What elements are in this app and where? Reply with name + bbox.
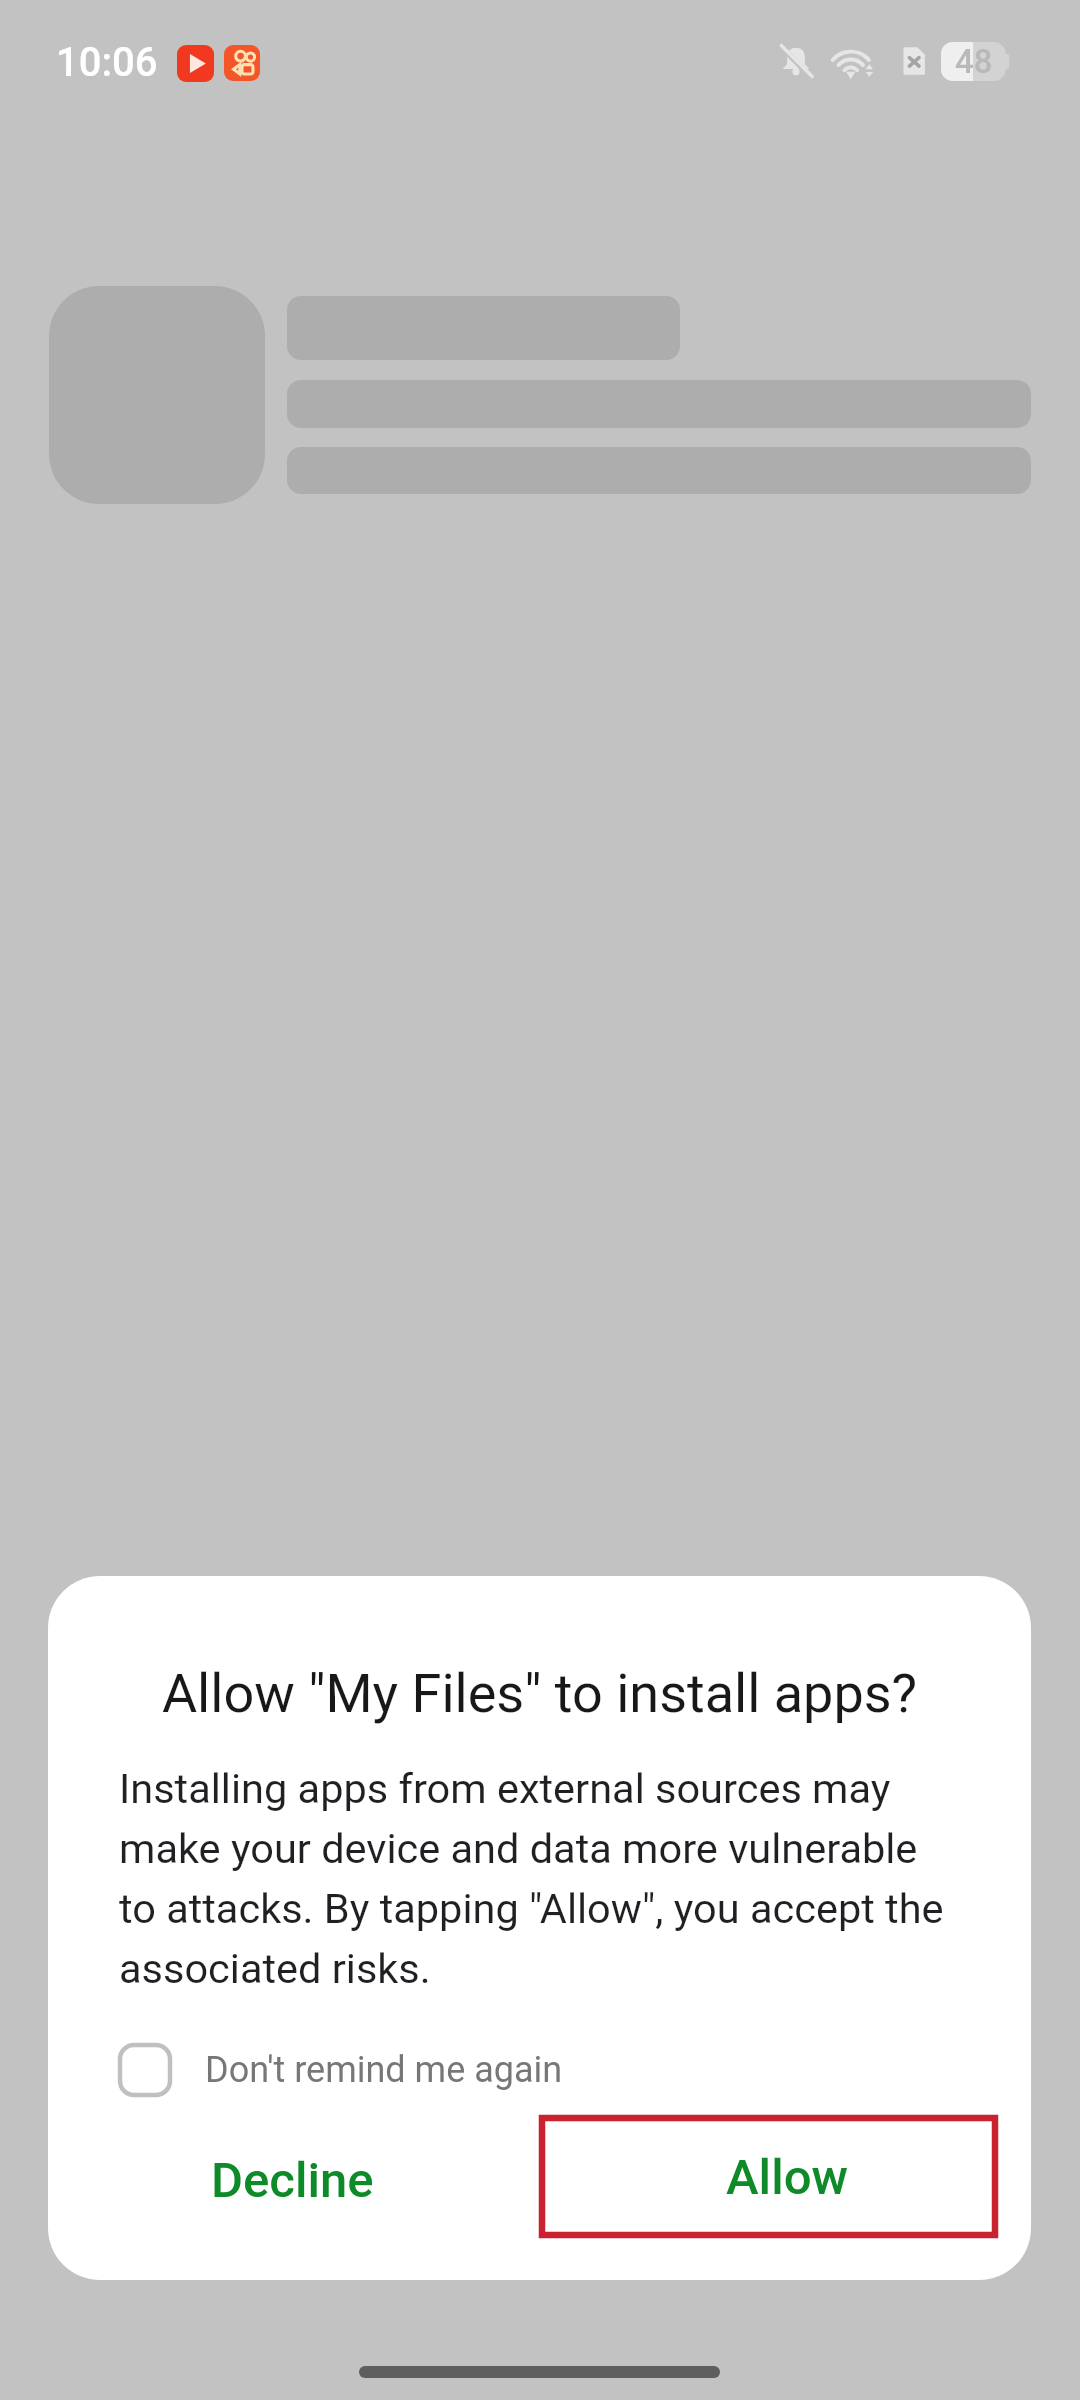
other: No SIM card bbox=[893, 40, 935, 82]
staticText: 48 bbox=[955, 42, 993, 81]
other: Screen recorder bbox=[177, 45, 214, 82]
button[interactable]: Don't remind me again bbox=[106, 2031, 563, 2109]
button[interactable]: Allow bbox=[542, 2118, 995, 2235]
button[interactable]: Decline bbox=[147, 2115, 437, 2245]
staticText: Allow bbox=[726, 2149, 848, 2206]
other: Wi-Fi bbox=[827, 36, 881, 90]
staticText: Installing apps from external sources ma… bbox=[119, 1764, 949, 1993]
staticText: Decline bbox=[211, 2152, 374, 2209]
staticText: Allow "My Files" to install apps? bbox=[48, 1662, 1031, 1725]
staticText: Don't remind me again bbox=[205, 2049, 563, 2091]
other: Ringer muted bbox=[772, 38, 820, 86]
staticText: 10:06 bbox=[56, 39, 158, 86]
other: Video app bbox=[224, 45, 260, 81]
